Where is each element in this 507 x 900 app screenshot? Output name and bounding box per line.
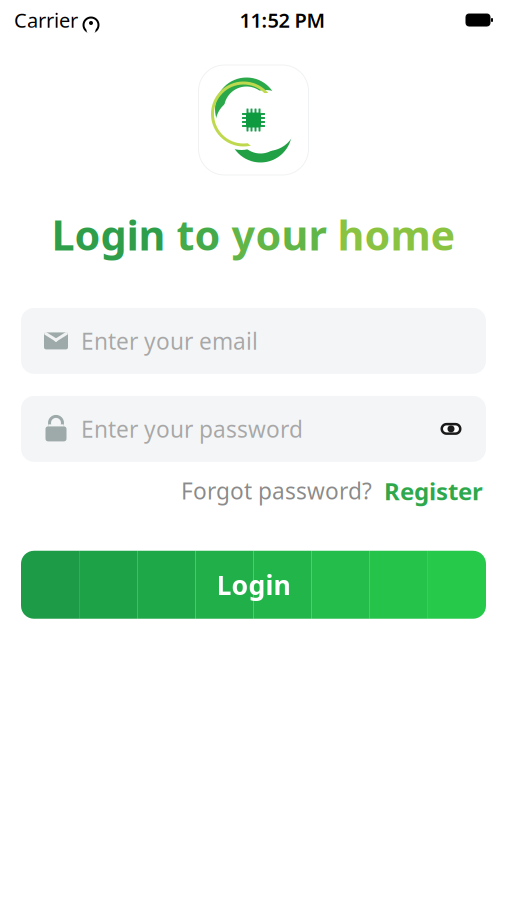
- staticText: Enter your email: [81, 326, 258, 356]
- staticText: Register: [384, 475, 483, 507]
- button[interactable]: Login: [21, 551, 486, 619]
- button[interactable]: Forgot password?: [181, 476, 372, 506]
- button[interactable]: Enter your email: [21, 308, 486, 374]
- staticText: home: [337, 207, 455, 262]
- staticText: 11:52 PM: [239, 7, 325, 33]
- staticText: Forgot password?: [181, 476, 372, 506]
- staticText: Enter your password: [81, 414, 303, 444]
- button[interactable]: Register: [384, 475, 483, 507]
- staticText: your: [231, 207, 326, 262]
- staticText: to: [176, 207, 220, 262]
- staticText: [326, 207, 337, 262]
- button[interactable]: Show password: [434, 415, 468, 443]
- staticText: Carrier: [14, 7, 78, 33]
- staticText: Login: [51, 207, 165, 262]
- staticText: Login: [216, 567, 290, 602]
- staticText: [220, 207, 231, 262]
- button[interactable]: Enter your password: [21, 396, 486, 462]
